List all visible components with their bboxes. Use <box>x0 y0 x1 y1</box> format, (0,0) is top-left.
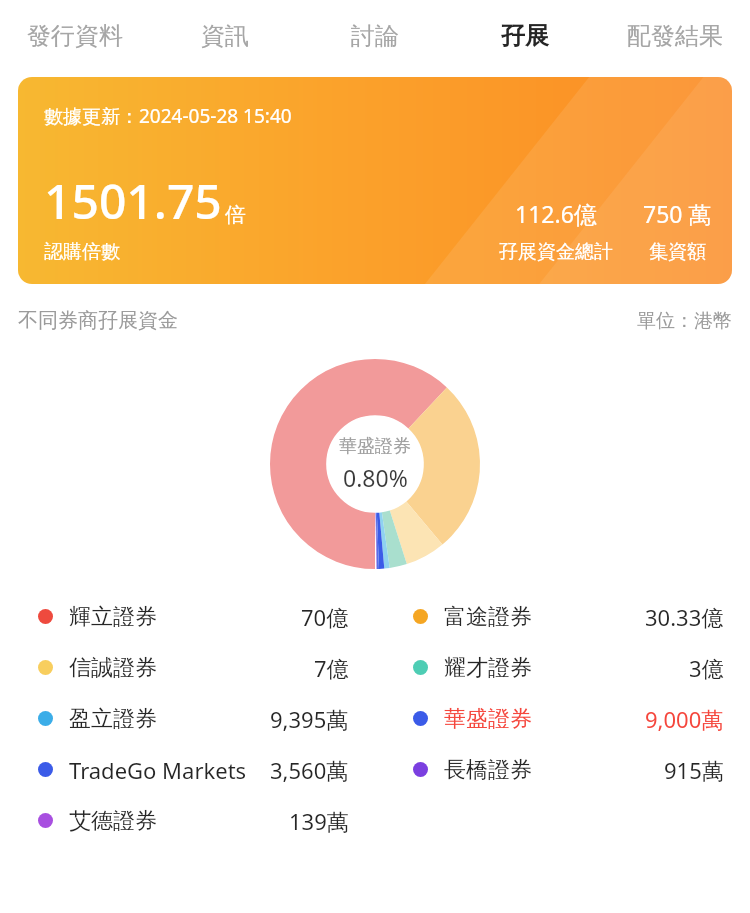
button[interactable]: 孖展 <box>450 0 600 72</box>
staticText: 長橋證券 <box>444 756 532 784</box>
button[interactable]: 數據更新：2024-05-28 15:40 <box>18 77 732 284</box>
staticText: 富途證券 <box>444 603 532 631</box>
button[interactable]: 討論 <box>300 0 450 72</box>
button[interactable]: 資訊 <box>150 0 300 72</box>
button[interactable]: 華盛證券 <box>375 693 750 744</box>
staticText: 華盛證券 <box>444 705 532 733</box>
button[interactable]: 長橋證券 <box>375 744 750 795</box>
staticText: 配發結果 <box>627 21 723 51</box>
staticText: 9,395萬 <box>270 704 349 734</box>
button[interactable]: TradeGo Markets <box>0 744 375 795</box>
staticText: 集資額 <box>649 240 706 264</box>
other: 券商孖展資金佔比圓環圖 <box>270 359 480 569</box>
button[interactable]: 艾德證券 <box>0 795 375 846</box>
button[interactable]: 耀才證券 <box>375 642 750 693</box>
staticText: 112.6億 <box>515 198 597 229</box>
staticText: 耀才證券 <box>444 654 532 682</box>
button[interactable]: 發行資料 <box>0 0 150 72</box>
staticText: 信誠證券 <box>69 654 157 682</box>
staticText: 單位：港幣 <box>637 309 732 333</box>
staticText: 輝立證券 <box>69 603 157 631</box>
staticText: 數據更新：2024-05-28 15:40 <box>44 103 292 129</box>
staticText: 孖展 <box>501 21 549 51</box>
staticText: 盈立證券 <box>69 705 157 733</box>
staticText: 70億 <box>301 602 349 632</box>
button[interactable]: 信誠證券 <box>0 642 375 693</box>
button[interactable]: 富途證券 <box>375 591 750 642</box>
staticText: 3億 <box>689 653 724 683</box>
staticText: 7億 <box>314 653 349 683</box>
staticText: 孖展資金總計 <box>499 240 613 264</box>
staticText: 3,560萬 <box>270 755 349 785</box>
staticText: 750 萬 <box>643 198 712 229</box>
staticText: TradeGo Markets <box>69 755 247 785</box>
button[interactable]: 盈立證券 <box>0 693 375 744</box>
staticText: 倍 <box>225 202 246 228</box>
staticText: 不同券商孖展資金 <box>18 308 178 333</box>
staticText: 0.80% <box>343 462 408 493</box>
staticText: 30.33億 <box>645 602 724 632</box>
staticText: 1501.75 <box>44 168 222 233</box>
staticText: 華盛證券 <box>339 435 411 458</box>
staticText: 9,000萬 <box>645 704 724 734</box>
staticText: 915萬 <box>664 755 724 785</box>
staticText: 艾德證券 <box>69 807 157 835</box>
staticText: 認購倍數 <box>44 240 120 264</box>
staticText: 139萬 <box>289 806 349 836</box>
button[interactable]: 配發結果 <box>600 0 750 72</box>
button[interactable]: 輝立證券 <box>0 591 375 642</box>
staticText: 討論 <box>351 21 399 51</box>
staticText: 資訊 <box>201 21 249 51</box>
staticText: 發行資料 <box>27 21 123 51</box>
